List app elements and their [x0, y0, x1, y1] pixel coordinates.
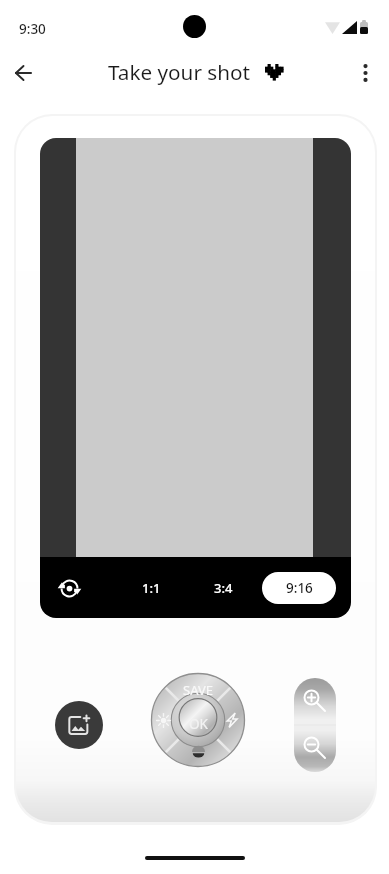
button[interactable]: Zoom out: [294, 725, 336, 772]
button[interactable]: Flip camera: [51, 570, 87, 606]
button[interactable]: 3:4: [198, 571, 248, 605]
button[interactable]: 9:16: [262, 572, 336, 604]
staticText: SAVE: [183, 681, 213, 699]
staticText: OK: [189, 715, 208, 733]
staticText: 1:1: [142, 579, 161, 597]
button[interactable]: Back: [2, 51, 45, 94]
staticText: Take your shot: [108, 58, 250, 86]
button[interactable]: Add photo from gallery: [55, 701, 103, 749]
button[interactable]: More options: [344, 51, 387, 94]
button[interactable]: Zoom in: [294, 678, 336, 725]
staticText: 3:4: [214, 579, 233, 597]
staticText: 9:30: [19, 20, 46, 38]
staticText: 9:16: [286, 579, 313, 597]
button[interactable]: 1:1: [126, 571, 176, 605]
button[interactable]: Control pad: [151, 673, 245, 767]
